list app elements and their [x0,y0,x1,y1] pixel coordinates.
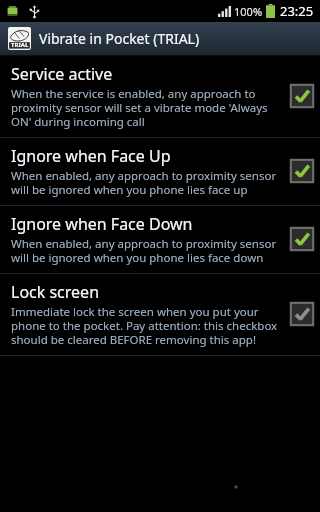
button[interactable]: Ignore when Face Up [0,138,320,205]
staticText: TRIAL [11,41,29,49]
staticText: Lock screen [11,281,100,303]
button[interactable]: Toggle setting [289,83,315,109]
staticText: When enabled, any approach to proximity … [11,168,283,197]
button[interactable]: Service active [0,56,320,137]
staticText: Immediate lock the screen when you put y… [11,304,283,347]
staticText: 100% [234,4,263,19]
staticText: Ignore when Face Down [11,213,193,235]
button[interactable]: App icon [0,22,320,55]
button[interactable]: Lock screen [0,274,320,355]
staticText: When the service is enabled, any approac… [11,86,283,129]
staticText: Vibrate in Pocket (TRIAL) [39,29,200,48]
other: App icon [8,27,31,50]
button[interactable]: Ignore when Face Down [0,206,320,273]
staticText: Service active [11,63,113,85]
button[interactable]: Toggle setting [289,301,315,327]
button[interactable]: Toggle setting [289,158,315,184]
staticText: 23:25 [280,2,314,20]
button[interactable]: Toggle setting [289,226,315,252]
staticText: Ignore when Face Up [11,145,171,167]
staticText: When enabled, any approach to proximity … [11,236,283,265]
